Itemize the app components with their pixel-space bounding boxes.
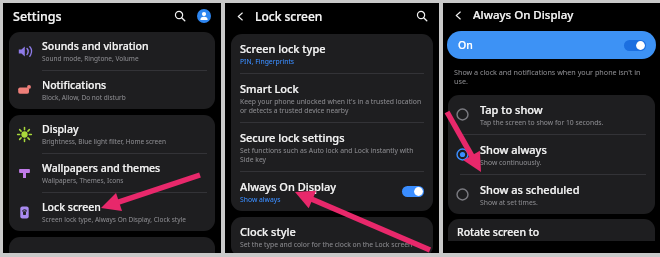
staticText: Secure lock settings (240, 130, 345, 145)
button[interactable]: Wallpapers and themes (9, 154, 215, 193)
button[interactable]: Rotate screen to (448, 219, 655, 241)
staticText: Rotate screen to (457, 225, 540, 239)
staticText: Clock style (240, 224, 296, 239)
button[interactable]: Notifications (9, 71, 215, 109)
staticText: Wallpapers and themes (42, 161, 161, 175)
button[interactable]: Back (451, 8, 466, 23)
staticText: Brightness, Blue light filter, Home scre… (42, 137, 166, 146)
staticText: Sounds and vibration (42, 39, 149, 53)
button[interactable]: Sounds and vibration (9, 32, 215, 71)
button[interactable]: Show always (448, 135, 655, 175)
staticText: Block, Allow, Do not disturb (42, 93, 126, 102)
button[interactable]: Search (172, 8, 188, 24)
button[interactable]: Account (196, 8, 212, 24)
staticText: Show always (480, 142, 547, 157)
staticText: Lock screen (255, 8, 323, 24)
staticText: Screen lock type, Always On Display, Clo… (42, 215, 186, 224)
staticText: Smart Lock (240, 81, 299, 96)
staticText: Tap the screen to show for 10 seconds. (480, 118, 604, 127)
staticText: Screen lock type (240, 41, 326, 56)
staticText: On (458, 38, 473, 52)
staticText: Show continuously. (480, 158, 542, 167)
staticText: Always On Display (240, 179, 336, 194)
button[interactable]: Smart Lock (231, 74, 433, 123)
button[interactable]: Search (414, 8, 430, 24)
staticText: Settings (13, 8, 62, 25)
button[interactable]: Secure lock settings (231, 123, 433, 172)
button[interactable]: Back (233, 9, 248, 24)
staticText: Show as scheduled (480, 182, 580, 197)
staticText: Display (42, 122, 79, 136)
staticText: Sound mode, Ringtone, Volume (42, 54, 139, 63)
button[interactable]: Clock style (231, 217, 433, 257)
button[interactable]: Tap to show (448, 95, 655, 135)
button[interactable]: Always On Display (231, 172, 433, 211)
staticText: Show a clock and notifications when your… (454, 67, 649, 86)
staticText: Keep your phone unlocked when it's in a … (240, 97, 424, 115)
button[interactable]: On (447, 31, 656, 59)
staticText: Set functions such as Auto lock and Lock… (240, 146, 424, 164)
staticText: Lock screen (42, 200, 101, 214)
staticText: Always On Display (473, 7, 574, 23)
button[interactable]: Lock screen (9, 193, 215, 231)
button[interactable]: Show as scheduled (448, 175, 655, 214)
button[interactable]: Display (9, 115, 215, 154)
button[interactable]: Screen lock type (231, 34, 433, 74)
staticText: PIN, Fingerprints (240, 57, 295, 66)
staticText: Show always (240, 195, 281, 204)
staticText: Set the type and color for the clock on … (240, 240, 424, 250)
staticText: Notifications (42, 78, 107, 92)
staticText: Wallpapers, Themes, Icons (42, 176, 124, 185)
staticText: Show at set times. (480, 198, 538, 207)
staticText: Tap to show (480, 102, 543, 117)
button[interactable] (9, 237, 215, 257)
